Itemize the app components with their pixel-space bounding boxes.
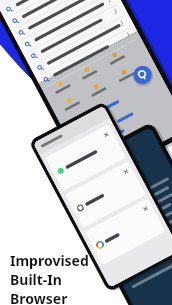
staticText: Improvised	[10, 251, 89, 270]
staticText: Browser	[10, 289, 68, 305]
staticText: Built-In	[10, 270, 62, 289]
button[interactable]: Improvised	[10, 251, 89, 305]
